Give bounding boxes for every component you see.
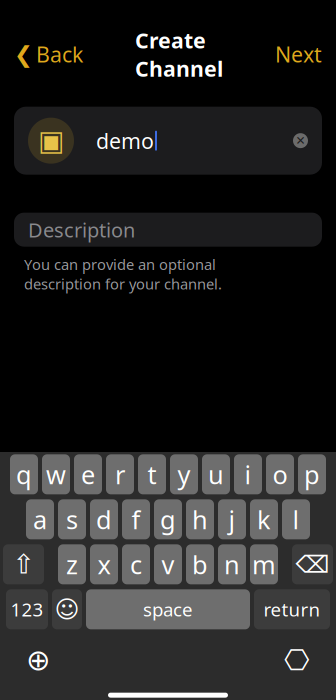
staticText: e: [81, 457, 95, 491]
staticText: q: [16, 457, 32, 491]
staticText: space: [143, 597, 193, 622]
staticText: return: [263, 597, 320, 622]
staticText: p: [304, 457, 320, 491]
staticText: ⎔: [284, 643, 310, 677]
staticText: m: [252, 547, 276, 581]
staticText: u: [208, 457, 224, 491]
button[interactable]: h: [186, 499, 214, 539]
button[interactable]: z: [58, 544, 86, 584]
staticText: ❮: [14, 41, 33, 67]
staticText: z: [66, 547, 78, 581]
staticText: i: [244, 457, 251, 491]
button[interactable]: m: [250, 544, 278, 584]
button[interactable]: e: [74, 454, 102, 494]
staticText: f: [131, 502, 140, 536]
button[interactable]: u: [202, 454, 230, 494]
staticText: 123: [10, 597, 43, 622]
staticText: a: [33, 502, 47, 536]
button[interactable]: v: [154, 544, 182, 584]
staticText: o: [272, 457, 287, 491]
button[interactable]: return: [254, 589, 330, 629]
staticText: Description: [28, 216, 135, 243]
button[interactable]: w: [42, 454, 70, 494]
staticText: ☺: [54, 596, 79, 623]
button[interactable]: space: [86, 589, 250, 629]
staticText: b: [192, 547, 208, 581]
staticText: s: [66, 502, 78, 536]
button[interactable]: f: [122, 499, 150, 539]
button[interactable]: s: [58, 499, 86, 539]
staticText: g: [160, 502, 176, 536]
button[interactable]: 123: [6, 589, 48, 629]
button[interactable]: ❮: [6, 34, 91, 74]
button[interactable]: c: [122, 544, 150, 584]
button[interactable]: x: [90, 544, 118, 584]
button[interactable]: Emoji: [52, 589, 82, 629]
button[interactable]: p: [298, 454, 326, 494]
staticText: k: [257, 502, 271, 536]
staticText: ✕: [295, 134, 305, 147]
button[interactable]: b: [186, 544, 214, 584]
staticText: r: [115, 457, 125, 491]
staticText: You can provide an optional description …: [24, 255, 222, 294]
staticText: ▣: [38, 125, 64, 157]
button[interactable]: Next: [267, 34, 330, 74]
staticText: t: [147, 457, 156, 491]
button[interactable]: d: [90, 499, 118, 539]
staticText: n: [224, 547, 240, 581]
staticText: Create Channel: [135, 26, 223, 83]
button[interactable]: y: [170, 454, 198, 494]
button[interactable]: i: [234, 454, 262, 494]
staticText: c: [130, 547, 142, 581]
staticText: ⌫: [295, 551, 329, 578]
button[interactable]: o: [266, 454, 294, 494]
staticText: x: [97, 547, 110, 581]
button[interactable]: a: [26, 499, 54, 539]
button[interactable]: t: [138, 454, 166, 494]
button[interactable]: j: [218, 499, 246, 539]
staticText: Back: [36, 40, 83, 68]
staticText: d: [96, 502, 112, 536]
staticText: w: [46, 457, 66, 491]
staticText: l: [292, 502, 299, 536]
staticText: v: [161, 547, 174, 581]
staticText: Next: [275, 40, 322, 68]
staticText: ⊕: [26, 643, 51, 677]
button[interactable]: Dictation: [276, 635, 318, 685]
button[interactable]: n: [218, 544, 246, 584]
button[interactable]: r: [106, 454, 134, 494]
button[interactable]: Delete: [292, 544, 333, 584]
staticText: demo: [96, 126, 154, 155]
staticText: ⇧: [12, 549, 34, 579]
staticText: y: [177, 457, 190, 491]
button[interactable]: q: [10, 454, 38, 494]
button[interactable]: Clear text: [285, 125, 316, 156]
button[interactable]: k: [250, 499, 278, 539]
button[interactable]: Switch keyboard: [18, 635, 59, 685]
button[interactable]: l: [282, 499, 310, 539]
button[interactable]: Shift: [3, 544, 44, 584]
button[interactable]: g: [154, 499, 182, 539]
staticText: j: [228, 502, 235, 536]
staticText: h: [192, 502, 208, 536]
